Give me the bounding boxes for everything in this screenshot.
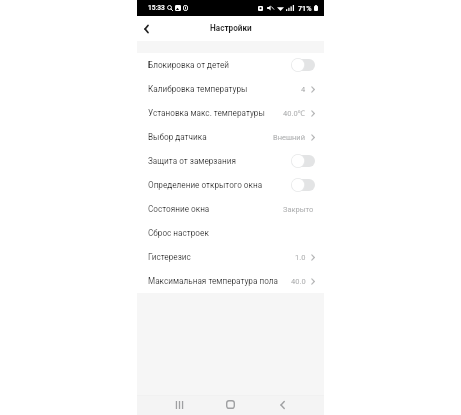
button[interactable]: Сброс настроек xyxy=(137,221,324,245)
button[interactable]: Recent apps xyxy=(169,395,189,414)
staticText: Выбор датчика xyxy=(148,132,207,142)
staticText: Установка макс. температуры xyxy=(148,108,265,118)
button[interactable]: Защита от замерзания xyxy=(291,154,315,168)
button[interactable]: Выбор датчика xyxy=(137,125,324,149)
button[interactable]: Home xyxy=(220,395,240,414)
staticText: 4 xyxy=(301,85,306,94)
button[interactable]: Back xyxy=(137,20,155,38)
button[interactable]: Определение открытого окна xyxy=(291,178,315,192)
button[interactable]: Калибровка температуры xyxy=(137,77,324,101)
staticText: Внешний xyxy=(273,133,306,142)
staticText: 71% xyxy=(298,4,312,12)
staticText: Блокировка от детей xyxy=(148,60,230,70)
staticText: Калибровка температуры xyxy=(148,84,248,94)
staticText: Закрыто xyxy=(283,205,314,214)
staticText: Настройки xyxy=(210,23,252,33)
button[interactable]: Установка макс. температуры xyxy=(137,101,324,125)
staticText: 40.0℃ xyxy=(283,108,306,118)
button[interactable]: Максимальная температура пола xyxy=(137,269,324,293)
staticText: 40.0 xyxy=(291,277,306,286)
staticText: Определение открытого окна xyxy=(148,180,263,190)
button[interactable]: Блокировка от детей xyxy=(291,58,315,72)
staticText: Гистерезис xyxy=(148,252,191,262)
button[interactable]: Блокировка от детей xyxy=(137,53,324,77)
button[interactable]: Гистерезис xyxy=(137,245,324,269)
button[interactable]: Состояние окна xyxy=(137,197,324,221)
button[interactable]: Определение открытого окна xyxy=(137,173,324,197)
staticText: Состояние окна xyxy=(148,204,210,214)
button[interactable]: Back xyxy=(272,395,292,414)
staticText: Сброс настроек xyxy=(148,228,209,238)
staticText: 1.0 xyxy=(295,253,306,262)
staticText: Защита от замерзания xyxy=(148,156,236,166)
staticText: Максимальная температура пола xyxy=(148,276,278,286)
button[interactable]: Защита от замерзания xyxy=(137,149,324,173)
staticText: 15:33 xyxy=(148,4,165,12)
